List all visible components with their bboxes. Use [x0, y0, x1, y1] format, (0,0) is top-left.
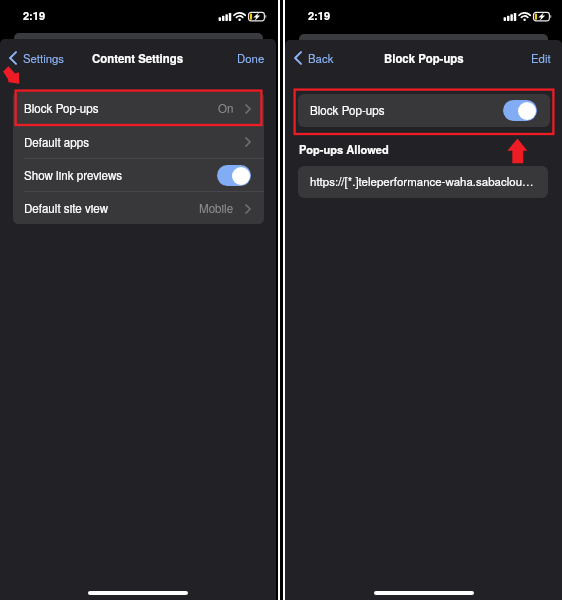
- staticText: Default apps: [24, 134, 89, 151]
- staticText: Done: [237, 50, 265, 66]
- staticText: Settings: [23, 50, 65, 66]
- button[interactable]: Block Pop-ups: [13, 92, 264, 125]
- button[interactable]: Show link previews: [217, 165, 251, 186]
- staticText: Pop-ups Allowed: [299, 142, 389, 158]
- button[interactable]: https://[*.]teleperformance-waha.sabaclo…: [298, 166, 548, 198]
- button[interactable]: Edit: [523, 45, 562, 71]
- staticText: Block Pop-ups: [384, 50, 464, 66]
- staticText: On: [218, 100, 234, 117]
- button[interactable]: Default apps: [13, 126, 264, 158]
- staticText: Block Pop-ups: [310, 102, 385, 119]
- staticText: Mobile: [199, 200, 234, 217]
- button[interactable]: Show link previews: [13, 159, 264, 191]
- staticText: Default site view: [24, 200, 108, 217]
- button[interactable]: Block Pop-ups: [503, 100, 537, 121]
- button[interactable]: Default site view: [13, 192, 264, 224]
- staticText: 2:19: [308, 8, 331, 24]
- staticText: Back: [308, 50, 334, 66]
- button[interactable]: Settings: [0, 45, 73, 71]
- button[interactable]: Back: [285, 45, 342, 71]
- button[interactable]: Done: [229, 45, 276, 71]
- staticText: https://[*.]teleperformance-waha.sabaclo…: [310, 173, 534, 189]
- staticText: Block Pop-ups: [24, 100, 99, 117]
- button[interactable]: Block Pop-ups: [298, 94, 550, 127]
- staticText: Edit: [531, 50, 551, 66]
- staticText: Content Settings: [92, 50, 184, 66]
- staticText: 2:19: [23, 8, 46, 24]
- staticText: Show link previews: [24, 167, 122, 184]
